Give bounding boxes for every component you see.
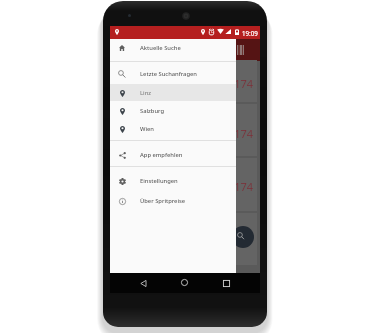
button[interactable]: Linz <box>110 84 236 101</box>
button[interactable]: Home <box>181 279 188 286</box>
button[interactable]: Search <box>232 226 254 248</box>
staticText: 1.174 <box>225 126 254 141</box>
button[interactable]: Back <box>140 280 147 287</box>
staticText: Salzburg <box>140 107 165 115</box>
staticText: App empfehlen <box>140 151 183 159</box>
button[interactable]: Über Spritpreise <box>110 192 236 209</box>
staticText: Linz <box>140 89 152 97</box>
button[interactable]: Aktuelle Suche <box>110 39 236 56</box>
button[interactable]: Letzte Suchanfragen <box>110 65 236 82</box>
button[interactable]: Wien <box>110 120 236 137</box>
staticText: Einstellungen <box>140 177 178 185</box>
button[interactable]: Einstellungen <box>110 172 236 189</box>
staticText: 1.174 <box>225 76 254 91</box>
staticText: 19:09 <box>242 29 258 37</box>
staticText: Aktuelle Suche <box>140 44 181 52</box>
staticText: Über Spritpreise <box>140 197 186 205</box>
button[interactable]: Salzburg <box>110 102 236 119</box>
staticText: Letzte Suchanfragen <box>140 70 197 78</box>
button[interactable]: App empfehlen <box>110 146 236 163</box>
staticText: Wien <box>140 125 154 133</box>
button[interactable]: Recent apps <box>223 280 230 287</box>
staticText: 1.174 <box>225 179 254 194</box>
